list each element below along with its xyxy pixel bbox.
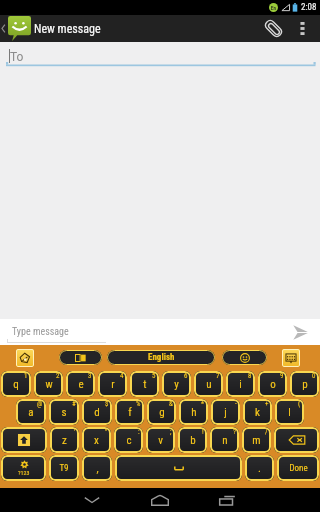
button[interactable]: b <box>178 427 207 453</box>
button[interactable]: . <box>245 455 274 481</box>
staticText: 0 <box>312 372 316 380</box>
staticText: s <box>61 406 67 419</box>
button[interactable]: Recents <box>199 488 255 512</box>
button[interactable]: z <box>50 427 79 453</box>
staticText: 9 <box>280 372 284 380</box>
button[interactable]: i <box>226 371 255 397</box>
staticText: $ <box>105 400 109 408</box>
button[interactable]: e <box>66 371 95 397</box>
staticText: b <box>190 434 196 447</box>
staticText: 2:08 <box>301 2 317 13</box>
button[interactable]: Delete <box>274 427 319 453</box>
button[interactable]: More options <box>287 15 317 42</box>
staticText: - <box>235 400 237 408</box>
staticText: e <box>78 378 84 391</box>
button[interactable]: j <box>211 399 240 425</box>
button[interactable]: q <box>1 371 31 397</box>
button[interactable]: s <box>49 399 79 425</box>
staticText: ; <box>170 428 172 436</box>
staticText: . <box>258 462 261 475</box>
staticText: l <box>288 406 291 419</box>
staticText: * <box>201 400 205 408</box>
button[interactable]: Space <box>115 455 242 481</box>
staticText: x <box>94 434 99 447</box>
staticText: j <box>224 406 227 419</box>
staticText: / <box>265 428 268 436</box>
button[interactable]: k <box>243 399 272 425</box>
button[interactable]: Symbols <box>1 455 46 481</box>
staticText: : <box>138 428 140 436</box>
button[interactable]: English <box>107 350 215 365</box>
staticText: q <box>13 378 19 391</box>
button[interactable]: m <box>242 427 271 453</box>
button[interactable]: Theme <box>16 349 34 367</box>
staticText: Done <box>289 463 308 474</box>
staticText: Type message <box>12 326 69 338</box>
button[interactable]: y <box>162 371 191 397</box>
button[interactable]: t <box>130 371 159 397</box>
staticText: 6 <box>184 372 188 380</box>
staticText: To <box>10 50 24 64</box>
button[interactable]: Attach <box>260 15 287 42</box>
button[interactable]: w <box>34 371 63 397</box>
staticText: c <box>126 434 132 447</box>
button[interactable]: h <box>179 399 208 425</box>
button[interactable]: v <box>146 427 175 453</box>
button[interactable]: Shift <box>1 427 47 453</box>
button[interactable]: Keyboard settings <box>282 349 300 367</box>
staticText: % <box>136 400 141 408</box>
staticText: d <box>94 406 100 419</box>
button[interactable]: , <box>82 455 112 481</box>
staticText: , <box>96 462 99 475</box>
button[interactable]: c <box>114 427 143 453</box>
button[interactable]: g <box>147 399 176 425</box>
staticText: ! <box>202 428 204 436</box>
button[interactable]: a <box>16 399 46 425</box>
button[interactable]: New message <box>0 15 107 42</box>
button[interactable]: x <box>82 427 111 453</box>
button[interactable]: n <box>210 427 239 453</box>
button[interactable]: Voice input <box>59 350 102 365</box>
button[interactable]: p <box>290 371 319 397</box>
staticText: m <box>252 434 261 447</box>
staticText: New message <box>34 22 101 36</box>
staticText: 4 <box>120 372 124 380</box>
staticText: o <box>270 378 276 391</box>
staticText: @ <box>37 400 43 408</box>
staticText: u <box>206 378 212 391</box>
staticText: " <box>105 428 108 436</box>
button[interactable]: Back <box>64 488 120 512</box>
button[interactable]: T9 <box>49 455 79 481</box>
button[interactable]: l <box>275 399 304 425</box>
staticText: k <box>255 406 260 419</box>
staticText: En <box>271 5 276 11</box>
button[interactable]: Send <box>280 319 320 345</box>
staticText: p <box>302 378 308 391</box>
staticText: 2 <box>56 372 60 380</box>
button[interactable]: o <box>258 371 287 397</box>
button[interactable]: r <box>98 371 127 397</box>
staticText: English <box>148 352 175 363</box>
staticText: 7 <box>216 372 220 380</box>
staticText: # <box>72 400 76 408</box>
staticText: 3 <box>88 372 92 380</box>
staticText: 5 <box>152 372 156 380</box>
staticText: i <box>239 378 242 391</box>
button[interactable]: d <box>82 399 112 425</box>
staticText: + <box>265 400 269 408</box>
staticText: n <box>222 434 228 447</box>
staticText: v <box>158 434 163 447</box>
staticText: w <box>45 378 53 391</box>
staticText: r <box>111 378 115 391</box>
staticText: ? <box>233 428 236 436</box>
button[interactable]: Emoji <box>222 350 267 365</box>
button[interactable]: Done <box>277 455 319 481</box>
staticText: g <box>159 406 165 419</box>
button[interactable]: u <box>194 371 223 397</box>
staticText: a <box>28 406 34 419</box>
button[interactable]: Home <box>132 488 188 512</box>
staticText: f <box>128 406 132 419</box>
staticText: t <box>143 378 147 391</box>
staticText: h <box>191 406 197 419</box>
button[interactable]: f <box>115 399 144 425</box>
